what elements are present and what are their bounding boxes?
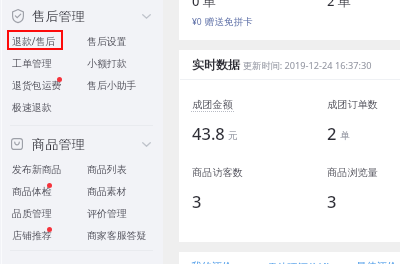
button[interactable]: 售后设置: [87, 31, 147, 51]
staticText: 实时数据: [192, 57, 240, 72]
button[interactable]: 小额打款: [87, 53, 147, 73]
button[interactable]: 我的评价: [191, 260, 232, 264]
button[interactable]: 售后管理: [0, 2, 163, 29]
staticText: 售后管理: [32, 8, 85, 25]
staticText: 0 单: [192, 0, 216, 10]
staticText: ¥0: [192, 16, 202, 28]
button[interactable]: 商品素材: [87, 181, 153, 201]
staticText: 工单管理: [12, 57, 52, 69]
staticText: 更新时间: 2019-12-24 16:37:30: [243, 59, 372, 72]
staticText: 极速退款: [12, 101, 52, 113]
staticText: 商品列表: [87, 163, 127, 175]
staticText: 退款/售后: [12, 34, 56, 48]
staticText: 发布新商品: [12, 163, 62, 175]
staticText: 3: [192, 190, 202, 212]
button[interactable]: 商品管理: [0, 130, 163, 157]
staticText: 商品访客数: [192, 166, 243, 179]
staticText: 赠送免拼卡: [205, 16, 253, 28]
button[interactable]: 商家客服答疑: [87, 225, 153, 245]
button[interactable]: 评价管理: [87, 203, 153, 223]
button[interactable]: 最佳评价: [356, 260, 397, 264]
staticText: 退货包运费: [12, 79, 62, 91]
button[interactable]: ¥0: [192, 16, 253, 28]
staticText: 43.8: [192, 122, 225, 144]
staticText: 商品体检: [12, 185, 52, 197]
staticText: 商家客服答疑: [87, 229, 147, 241]
staticText: 店铺推荐: [12, 229, 52, 241]
button[interactable]: 工单管理: [12, 53, 64, 73]
staticText: 成团订单数: [327, 98, 378, 111]
button[interactable]: 需处理评价(4): [267, 260, 330, 264]
other: Collapse 售后管理: [142, 14, 151, 19]
staticText: 售后小助手: [87, 79, 137, 91]
staticText: 2: [327, 122, 337, 144]
staticText: 商品管理: [32, 136, 85, 153]
staticText: 售后设置: [87, 35, 127, 47]
button[interactable]: 商品体检: [12, 181, 74, 201]
staticText: 2 单: [327, 0, 351, 10]
staticText: 小额打款: [87, 57, 127, 69]
other: Collapse 商品管理: [142, 142, 151, 147]
staticText: 商品素材: [87, 185, 127, 197]
button[interactable]: 退款/售后: [12, 31, 64, 51]
button[interactable]: 店铺推荐: [12, 225, 74, 245]
staticText: 3: [327, 190, 337, 212]
button[interactable]: 商品列表: [87, 159, 153, 179]
staticText: 评价管理: [87, 207, 127, 219]
button[interactable]: [7, 30, 63, 50]
staticText: 成团金额: [192, 98, 233, 111]
button[interactable]: 品质管理: [12, 203, 74, 223]
button[interactable]: 售后小助手: [87, 75, 147, 95]
staticText: 元: [228, 130, 238, 142]
staticText: 商品浏览量: [327, 166, 378, 179]
staticText: 品质管理: [12, 207, 52, 219]
button[interactable]: 发布新商品: [12, 159, 74, 179]
button[interactable]: 退货包运费: [12, 75, 64, 95]
button[interactable]: 极速退款: [12, 97, 64, 117]
staticText: 单: [340, 130, 350, 142]
